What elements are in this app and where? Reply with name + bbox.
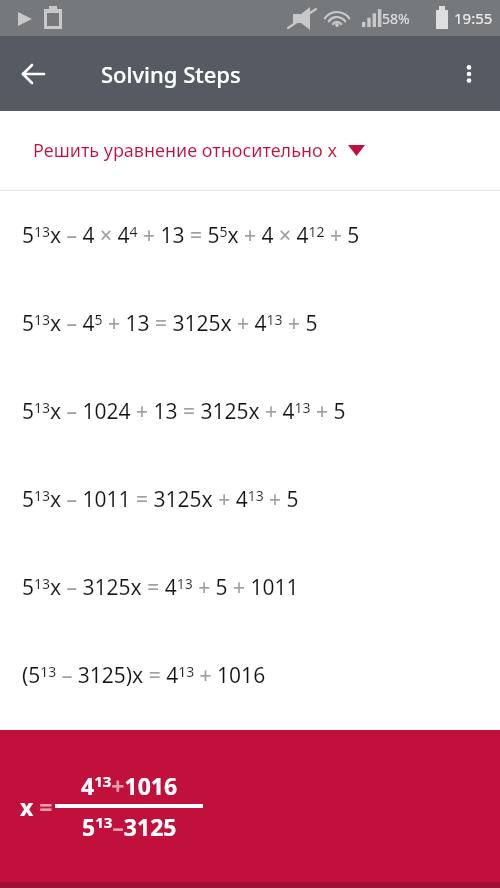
button[interactable]: x = <box>0 730 500 882</box>
staticText: 58% <box>382 9 410 28</box>
staticText: 513x – 1024 + 13 = 3125x + 413 + 5 <box>22 397 346 426</box>
button[interactable]: Решить уравнение относительно x <box>0 111 500 190</box>
button[interactable]: More options <box>445 50 493 98</box>
button[interactable]: 513x – 1011 = 3125x + 413 + 5 <box>0 455 500 543</box>
staticText: 513x – 45 + 13 = 3125x + 413 + 5 <box>22 309 318 338</box>
staticText: 513x – 1011 = 3125x + 413 + 5 <box>22 485 299 514</box>
staticText: 513x – 4 × 44 + 13 = 55x + 4 × 412 + 5 <box>22 221 360 250</box>
staticText: Solving Steps <box>101 59 241 89</box>
button[interactable]: Back <box>9 50 57 98</box>
staticText: 513x – 3125x = 413 + 5 + 1011 <box>22 573 299 602</box>
button[interactable]: 513x – 1024 + 13 = 3125x + 413 + 5 <box>0 367 500 455</box>
button[interactable]: 513x – 4 × 44 + 13 = 55x + 4 × 412 + 5 <box>0 191 500 279</box>
staticText: 513–3125 <box>82 811 177 842</box>
staticText: Решить уравнение относительно x <box>33 138 337 163</box>
staticText: (513 – 3125)x = 413 + 1016 <box>22 661 266 690</box>
staticText: 413+1016 <box>81 770 178 801</box>
button[interactable]: 513x – 45 + 13 = 3125x + 413 + 5 <box>0 279 500 367</box>
button[interactable]: 513x – 3125x = 413 + 5 + 1011 <box>0 543 500 631</box>
staticText: 19:55 <box>454 8 493 28</box>
staticText: x = <box>20 791 53 822</box>
button[interactable]: (513 – 3125)x = 413 + 1016 <box>0 631 500 719</box>
